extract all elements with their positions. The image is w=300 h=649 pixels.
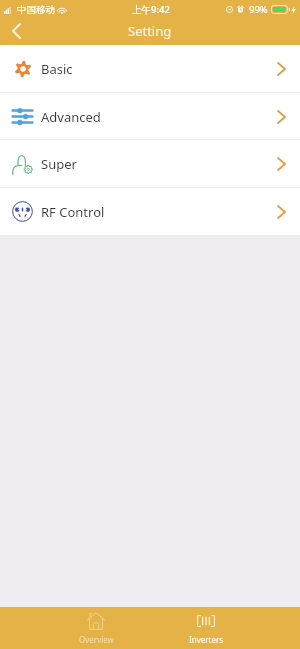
button[interactable]: Advanced	[0, 93, 300, 140]
button[interactable]: Back	[0, 19, 36, 45]
button[interactable]: Super	[0, 140, 300, 188]
button[interactable]: Inverters	[151, 607, 261, 649]
staticText: Advanced	[41, 108, 101, 126]
staticText: Super	[41, 155, 77, 173]
staticText: 上午9:42	[132, 3, 170, 16]
button[interactable]: RF Control	[0, 188, 300, 235]
staticText: RF Control	[41, 203, 105, 221]
staticText: Inverters	[189, 634, 224, 645]
staticText: 99%	[249, 3, 268, 16]
button[interactable]: Overview	[41, 607, 151, 649]
button[interactable]: Basic	[0, 45, 300, 93]
staticText: 中国移动	[17, 4, 55, 16]
staticText: Basic	[41, 60, 73, 78]
staticText: Overview	[79, 634, 114, 645]
staticText: Setting	[128, 22, 172, 40]
